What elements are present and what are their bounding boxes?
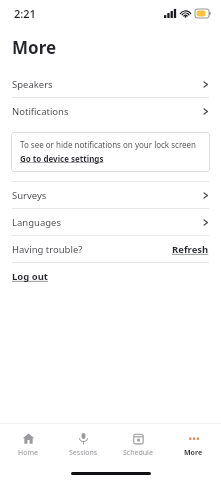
button[interactable]: Schedule <box>113 429 163 461</box>
button[interactable]: Home <box>3 429 53 461</box>
button[interactable]: Notifications <box>0 98 221 124</box>
staticText: Surveys <box>12 189 47 202</box>
button[interactable]: Speakers <box>0 71 221 97</box>
staticText: Go to device settings <box>20 153 104 164</box>
staticText: Notifications <box>12 105 69 118</box>
button[interactable]: Languages <box>0 209 221 235</box>
other: Schedule <box>132 432 145 445</box>
staticText: More <box>184 448 203 458</box>
button[interactable]: More <box>168 429 218 461</box>
staticText: Log out <box>12 270 48 283</box>
other: Sessions <box>77 432 90 445</box>
staticText: Home <box>18 448 38 458</box>
staticText: Schedule <box>123 448 153 458</box>
button[interactable]: Surveys <box>0 182 221 208</box>
button[interactable]: Log out <box>0 263 221 289</box>
staticText: Refresh <box>172 243 209 256</box>
staticText: Speakers <box>12 78 53 91</box>
staticText: Languages <box>12 216 61 229</box>
button[interactable]: Refresh <box>172 243 209 256</box>
staticText: To see or hide notifications on your loc… <box>20 139 197 150</box>
other: More <box>187 432 200 445</box>
staticText: 2:21 <box>14 6 36 21</box>
button[interactable]: To see or hide notifications on your loc… <box>11 132 210 172</box>
button[interactable]: Sessions <box>58 429 108 461</box>
other: Home <box>22 432 35 445</box>
staticText: More <box>12 36 57 59</box>
staticText: Sessions <box>69 448 98 458</box>
staticText: Having trouble? <box>12 243 83 256</box>
